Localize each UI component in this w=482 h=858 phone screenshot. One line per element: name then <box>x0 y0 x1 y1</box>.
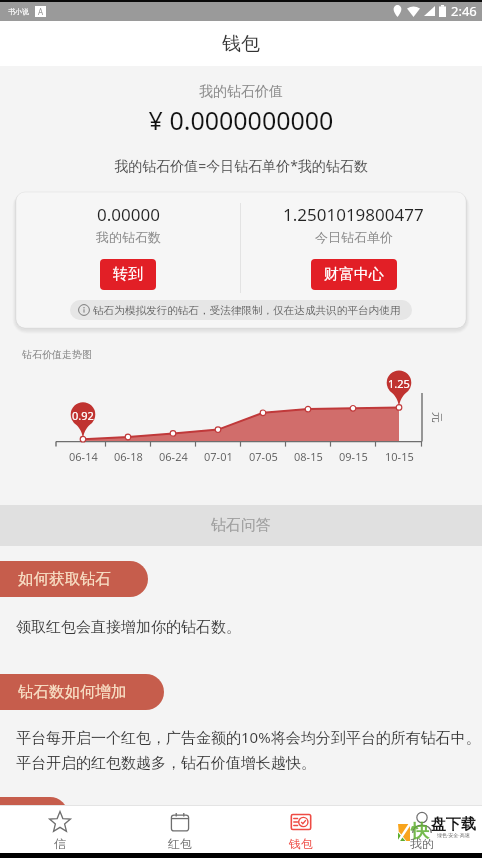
staticText: 元 <box>430 412 444 423</box>
staticText: 书小说 <box>8 7 29 16</box>
staticText: 0.00000 <box>97 203 160 226</box>
staticText: 07-05 <box>249 449 278 464</box>
button[interactable]: 转到 <box>100 259 156 290</box>
staticText: 0.92 <box>72 408 94 423</box>
staticText: 转到 <box>113 265 143 284</box>
staticText: 06-18 <box>114 449 143 464</box>
staticText: 红包 <box>168 836 192 851</box>
staticText: 我的钻石价值 <box>0 83 482 101</box>
staticText: 10-15 <box>385 449 414 464</box>
staticText: 钱包 <box>222 32 260 56</box>
staticText: 2:46 <box>451 2 477 20</box>
staticText: 我的钻石数 <box>96 229 161 245</box>
staticText: 09-15 <box>339 449 368 464</box>
staticText <box>18 805 31 826</box>
staticText: 平台每开启一个红包，广告金额的10%将会均分到平台的所有钻石中。 平台开启的红包… <box>16 727 481 772</box>
button[interactable]: 财富中心 <box>311 259 397 290</box>
staticText: 我的钻石价值=今日钻石单价*我的钻石数 <box>0 156 482 175</box>
button[interactable]: 我的 <box>361 806 482 853</box>
staticText: 信 <box>54 836 66 851</box>
button[interactable]: 钻石数如何增加 <box>0 674 164 710</box>
button[interactable]: 红包 <box>120 806 240 853</box>
button[interactable] <box>0 797 68 833</box>
staticText: 1.25 <box>388 376 410 391</box>
staticText: 财富中心 <box>324 265 384 284</box>
staticText: 08-15 <box>294 449 323 464</box>
staticText: 如何获取钻石 <box>18 569 111 589</box>
button[interactable]: 信 <box>0 806 120 853</box>
button[interactable]: 钱包 <box>240 806 361 853</box>
staticText: 钻石价值走势图 <box>22 348 92 361</box>
staticText: 钱包 <box>289 836 313 851</box>
staticText: 1.2501019800477 <box>283 203 424 226</box>
staticText: 钻石数如何增加 <box>18 682 127 702</box>
staticText: 06-24 <box>159 449 188 464</box>
button[interactable]: 如何获取钻石 <box>0 561 148 597</box>
staticText: 06-14 <box>69 449 98 464</box>
staticText: 盘下载 <box>431 815 476 834</box>
staticText: ¥ 0.0000000000 <box>0 103 482 137</box>
staticText: 07-01 <box>204 449 233 464</box>
staticText: 钻石为模拟发行的钻石，受法律限制，仅在达成共识的平台内使用 <box>93 304 401 317</box>
staticText: 我的 <box>410 836 434 851</box>
staticText: 钻石问答 <box>211 516 271 535</box>
staticText: 快 <box>411 820 429 843</box>
staticText: 绿色·安全·高速 <box>437 832 470 839</box>
staticText: 领取红包会直接增加你的钻石数。 <box>16 618 241 637</box>
staticText: A <box>38 6 44 17</box>
staticText: 今日钻石单价 <box>315 229 393 245</box>
